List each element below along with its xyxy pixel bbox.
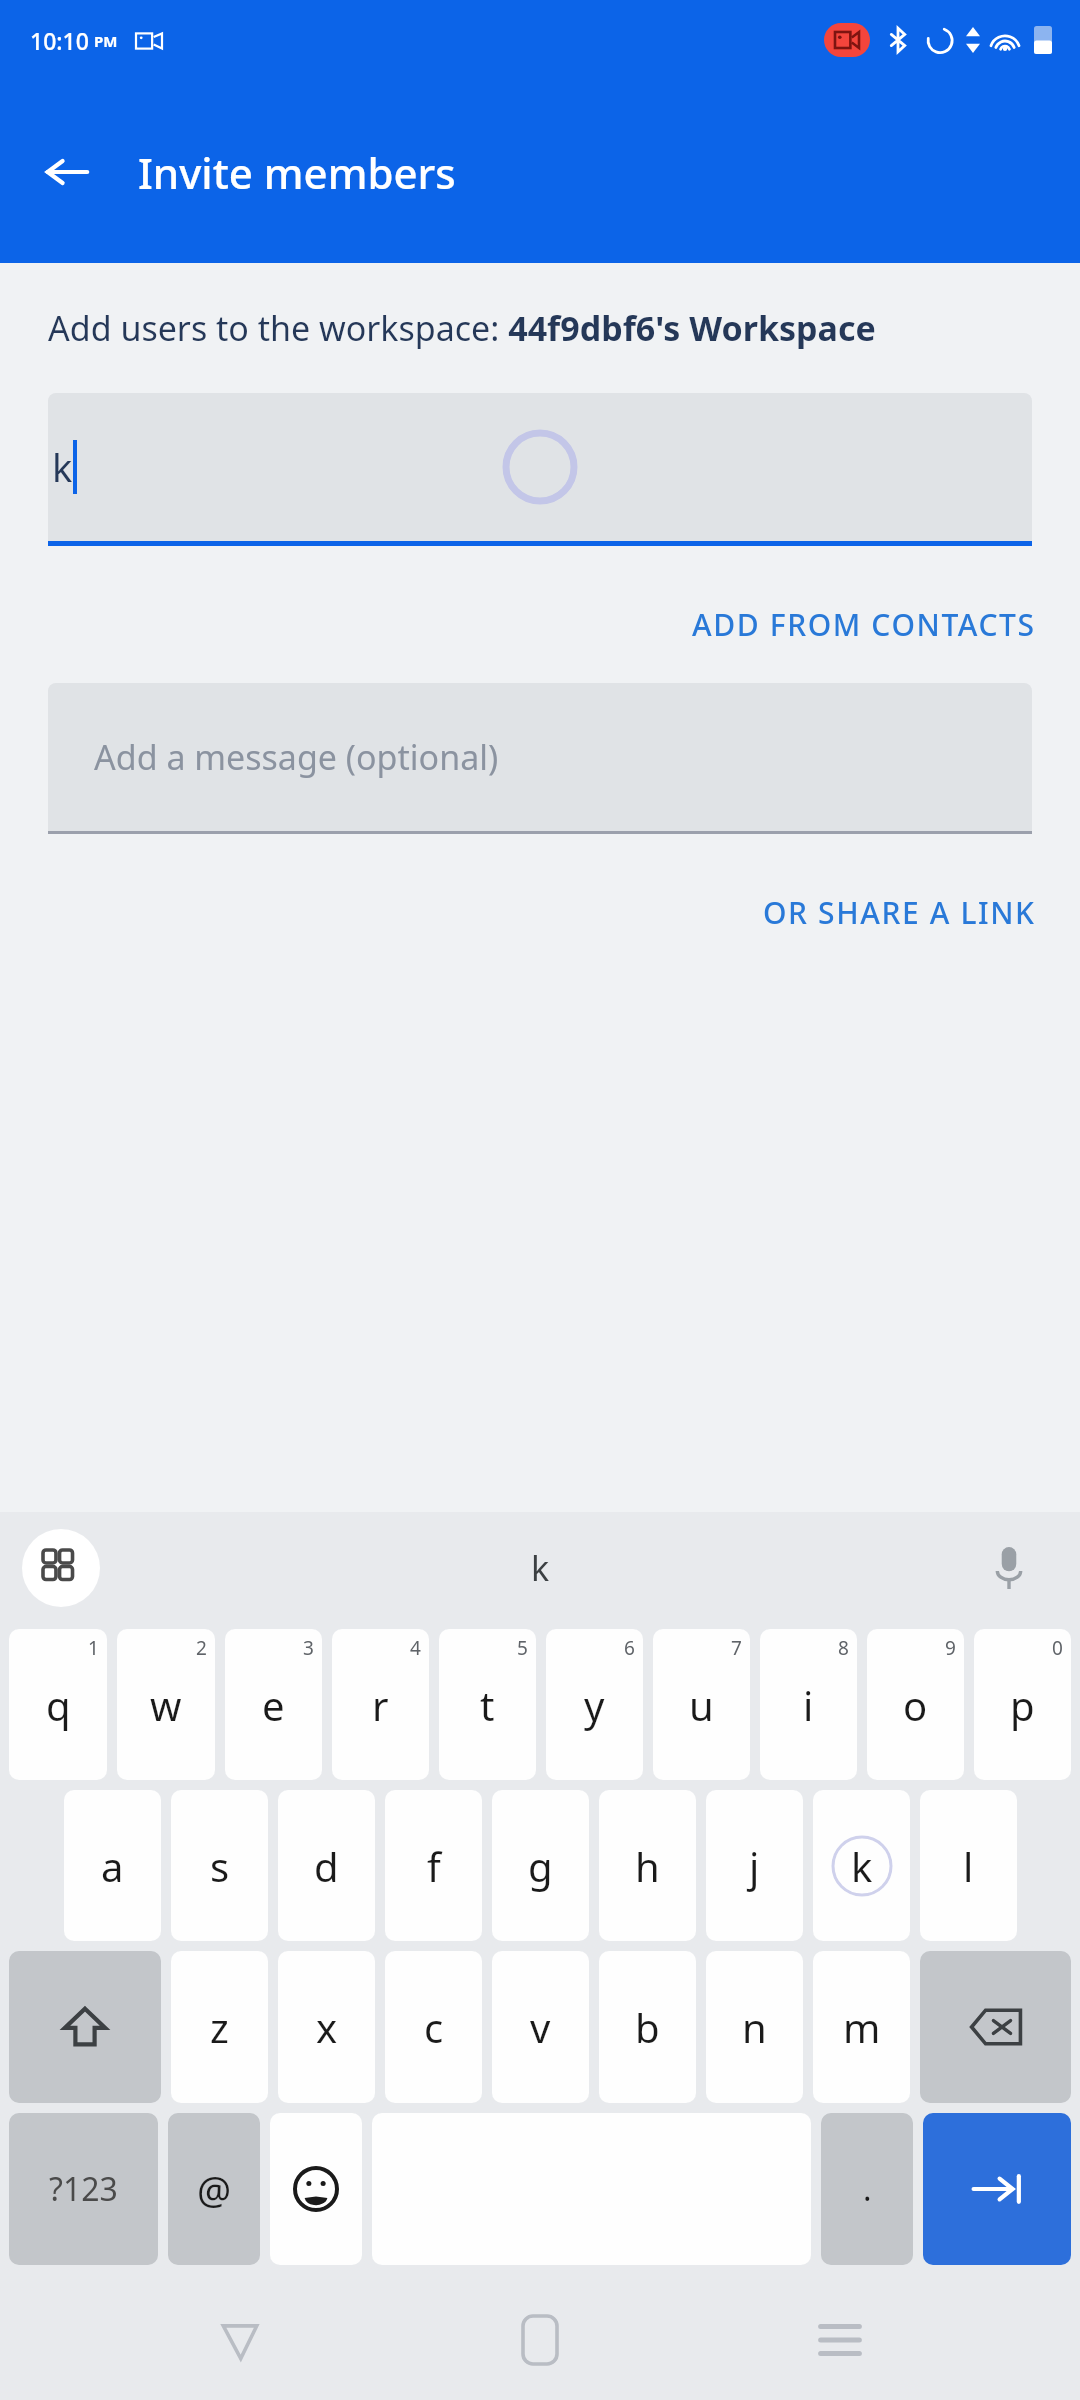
button[interactable]: Backspace — [920, 1951, 1071, 2103]
staticText: . — [863, 2167, 872, 2211]
button[interactable]: ADD FROM CONTACTS — [678, 594, 1050, 655]
staticText: l — [963, 1839, 974, 1893]
button[interactable]: x — [278, 1951, 375, 2103]
button[interactable]: r — [332, 1629, 429, 1780]
button[interactable]: Voice input — [974, 1533, 1044, 1603]
staticText: y — [584, 1678, 605, 1732]
button[interactable]: c — [385, 1951, 482, 2103]
button[interactable]: Symbols — [9, 2113, 158, 2265]
staticText: @ — [197, 2163, 232, 2215]
staticText: k — [531, 1545, 550, 1591]
button[interactable]: h — [599, 1790, 696, 1941]
button[interactable]: t — [439, 1629, 536, 1780]
button[interactable]: v — [492, 1951, 589, 2103]
staticText: i — [803, 1678, 814, 1732]
staticText: 4 — [410, 1635, 421, 1661]
staticText: 7 — [731, 1635, 742, 1661]
button[interactable]: s — [171, 1790, 268, 1941]
button[interactable]: z — [171, 1951, 268, 2103]
staticText: 1 — [88, 1635, 99, 1661]
button[interactable]: o — [867, 1629, 964, 1780]
staticText: w — [150, 1678, 182, 1732]
button[interactable]: m — [813, 1951, 910, 2103]
button[interactable]: Home — [480, 2280, 600, 2400]
button[interactable]: d — [278, 1790, 375, 1941]
staticText: h — [635, 1839, 660, 1893]
staticText: b — [635, 2000, 660, 2054]
staticText: ADD FROM CONTACTS — [692, 604, 1036, 645]
staticText: Add a message (optional) — [94, 734, 499, 780]
button[interactable]: b — [599, 1951, 696, 2103]
staticText: f — [427, 1839, 441, 1893]
staticText: c — [424, 2000, 444, 2054]
staticText: 3 — [303, 1635, 314, 1661]
staticText: v — [530, 2000, 551, 2054]
button[interactable]: Back — [22, 127, 112, 217]
button[interactable]: n — [706, 1951, 803, 2103]
button[interactable]: OR SHARE A LINK — [749, 882, 1050, 943]
staticText: q — [46, 1678, 71, 1732]
button[interactable]: Recents — [780, 2280, 900, 2400]
staticText: d — [314, 1839, 339, 1893]
staticText: 9 — [945, 1635, 956, 1661]
button[interactable]: e — [225, 1629, 322, 1780]
button[interactable]: j — [706, 1790, 803, 1941]
button[interactable]: f — [385, 1790, 482, 1941]
staticText: 8 — [838, 1635, 849, 1661]
button[interactable]: g — [492, 1790, 589, 1941]
staticText: Invite members — [138, 144, 456, 201]
staticText: 5 — [517, 1635, 528, 1661]
button[interactable]: k — [491, 1531, 590, 1605]
button[interactable]: i — [760, 1629, 857, 1780]
staticText: ?123 — [49, 2167, 118, 2211]
button[interactable]: p — [974, 1629, 1071, 1780]
staticText: OR SHARE A LINK — [763, 892, 1036, 933]
staticText: j — [749, 1839, 760, 1893]
button[interactable]: Emoji — [270, 2113, 362, 2265]
staticText: 10:10 — [30, 25, 89, 56]
staticText: g — [528, 1839, 553, 1893]
staticText: x — [316, 2000, 338, 2054]
staticText: s — [210, 1839, 230, 1893]
staticText: 2 — [196, 1635, 207, 1661]
button[interactable]: Back — [180, 2280, 300, 2400]
button[interactable]: q — [9, 1629, 107, 1780]
staticText: p — [1010, 1678, 1035, 1732]
button[interactable]: Enter — [923, 2113, 1071, 2265]
button[interactable]: w — [117, 1629, 215, 1780]
button[interactable]: k — [48, 393, 1032, 541]
staticText: o — [903, 1678, 928, 1732]
button[interactable]: Add a message (optional) — [48, 683, 1032, 831]
staticText: a — [101, 1839, 124, 1893]
staticText: u — [689, 1678, 714, 1732]
staticText: 0 — [1052, 1635, 1063, 1661]
staticText: 6 — [624, 1635, 635, 1661]
button[interactable]: y — [546, 1629, 643, 1780]
staticText: e — [262, 1678, 285, 1732]
button[interactable]: At sign — [168, 2113, 260, 2265]
staticText: z — [210, 2000, 229, 2054]
button[interactable]: Keyboard menu — [22, 1529, 100, 1607]
button[interactable]: a — [64, 1790, 161, 1941]
button[interactable]: Shift — [9, 1951, 161, 2103]
staticText: k — [52, 441, 73, 493]
staticText: k — [851, 1839, 873, 1893]
staticText: m — [843, 2000, 881, 2054]
staticText: Add users to the workspace: 44f9dbf6's W… — [48, 305, 876, 351]
button[interactable]: Period — [821, 2113, 913, 2265]
button[interactable]: l — [920, 1790, 1017, 1941]
button[interactable]: k — [813, 1790, 910, 1941]
button[interactable]: u — [653, 1629, 750, 1780]
staticText: PM — [94, 31, 118, 51]
staticText: n — [742, 2000, 767, 2054]
staticText: r — [372, 1678, 389, 1732]
staticText: t — [480, 1678, 495, 1732]
